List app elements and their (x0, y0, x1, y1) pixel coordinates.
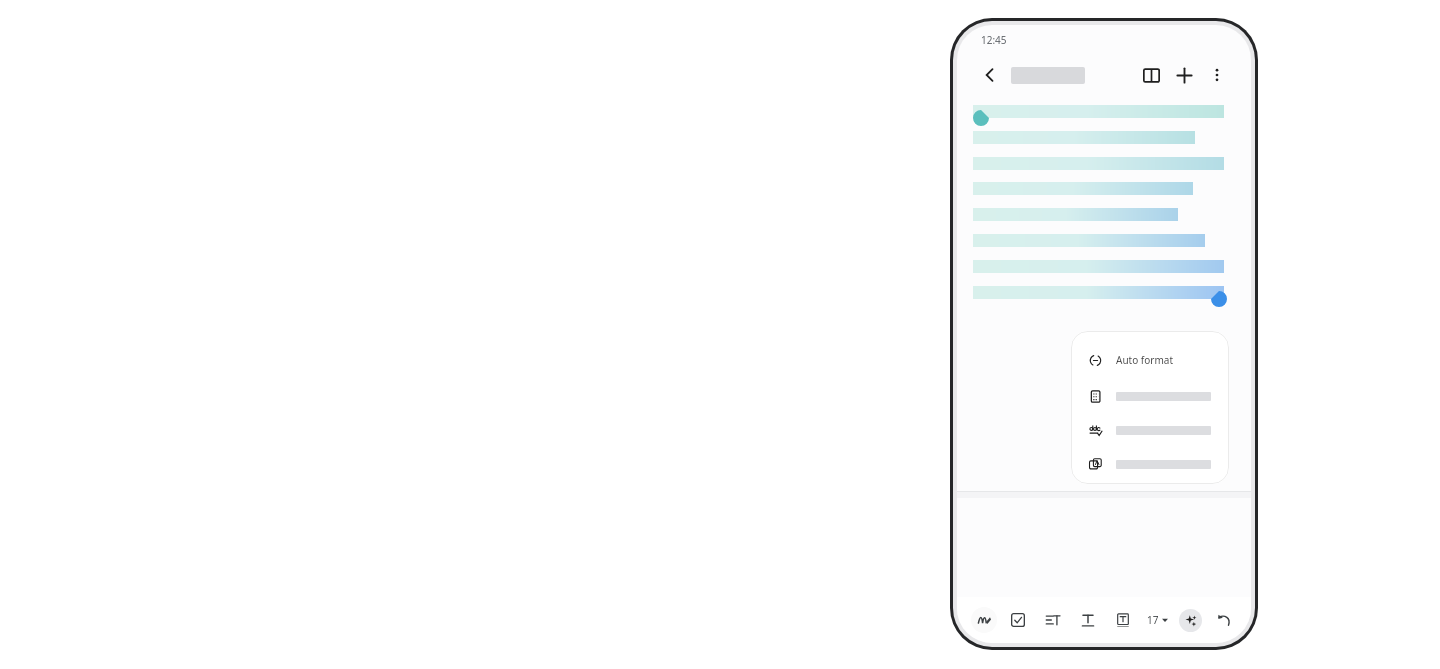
button[interactable]: Add (1170, 61, 1198, 89)
button[interactable]: More options (1203, 61, 1231, 89)
button[interactable]: Checklist (1005, 607, 1031, 633)
button[interactable]: Paragraph style (1040, 607, 1066, 633)
button[interactable]: Undo (1211, 607, 1237, 633)
button[interactable]: Auto format (1071, 345, 1229, 375)
button[interactable]: Draw (971, 607, 997, 633)
button[interactable]: Text format (1075, 607, 1101, 633)
button[interactable]: Text box (1110, 607, 1136, 633)
staticText: 17 (1147, 613, 1159, 627)
staticText: Auto format (1116, 353, 1174, 367)
button[interactable]: AI assist (1179, 609, 1202, 632)
button[interactable] (1071, 379, 1229, 413)
button[interactable] (1071, 447, 1229, 481)
staticText: 12:45 (981, 33, 1007, 47)
button[interactable] (1071, 413, 1229, 447)
button[interactable]: Back (977, 62, 1003, 88)
button[interactable]: Reading mode (1137, 61, 1165, 89)
button[interactable]: 17 (1145, 613, 1170, 627)
staticText: 1/100 (1195, 476, 1214, 486)
